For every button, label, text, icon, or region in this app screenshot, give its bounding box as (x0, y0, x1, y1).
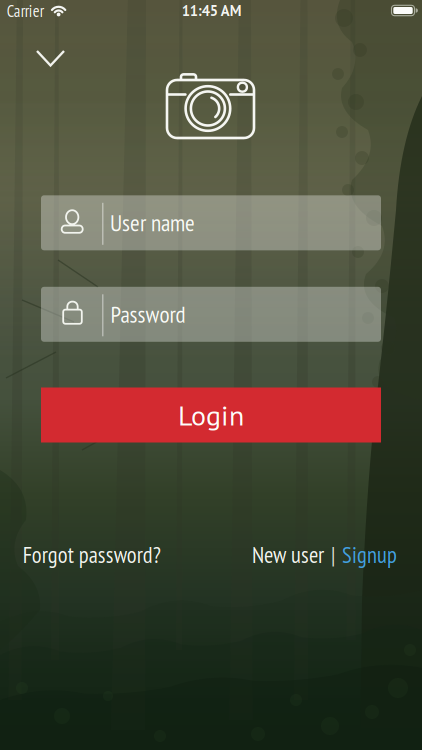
button[interactable]: Login (41, 387, 381, 442)
staticText: User name (110, 207, 195, 238)
staticText: 11:45 AM (182, 1, 242, 20)
staticText: Signup (342, 540, 397, 569)
staticText: Forgot password? (23, 540, 161, 569)
button[interactable]: Signup (342, 540, 397, 569)
button[interactable]: Dismiss (29, 49, 72, 68)
staticText: Carrier (7, 0, 44, 21)
staticText: Login (178, 397, 244, 433)
button[interactable]: Forgot password? (23, 540, 161, 569)
staticText: Password (110, 299, 185, 329)
staticText: New user (252, 540, 324, 569)
staticText: | (331, 540, 335, 569)
button[interactable]: Password (41, 287, 381, 342)
button[interactable]: User name (41, 195, 381, 250)
